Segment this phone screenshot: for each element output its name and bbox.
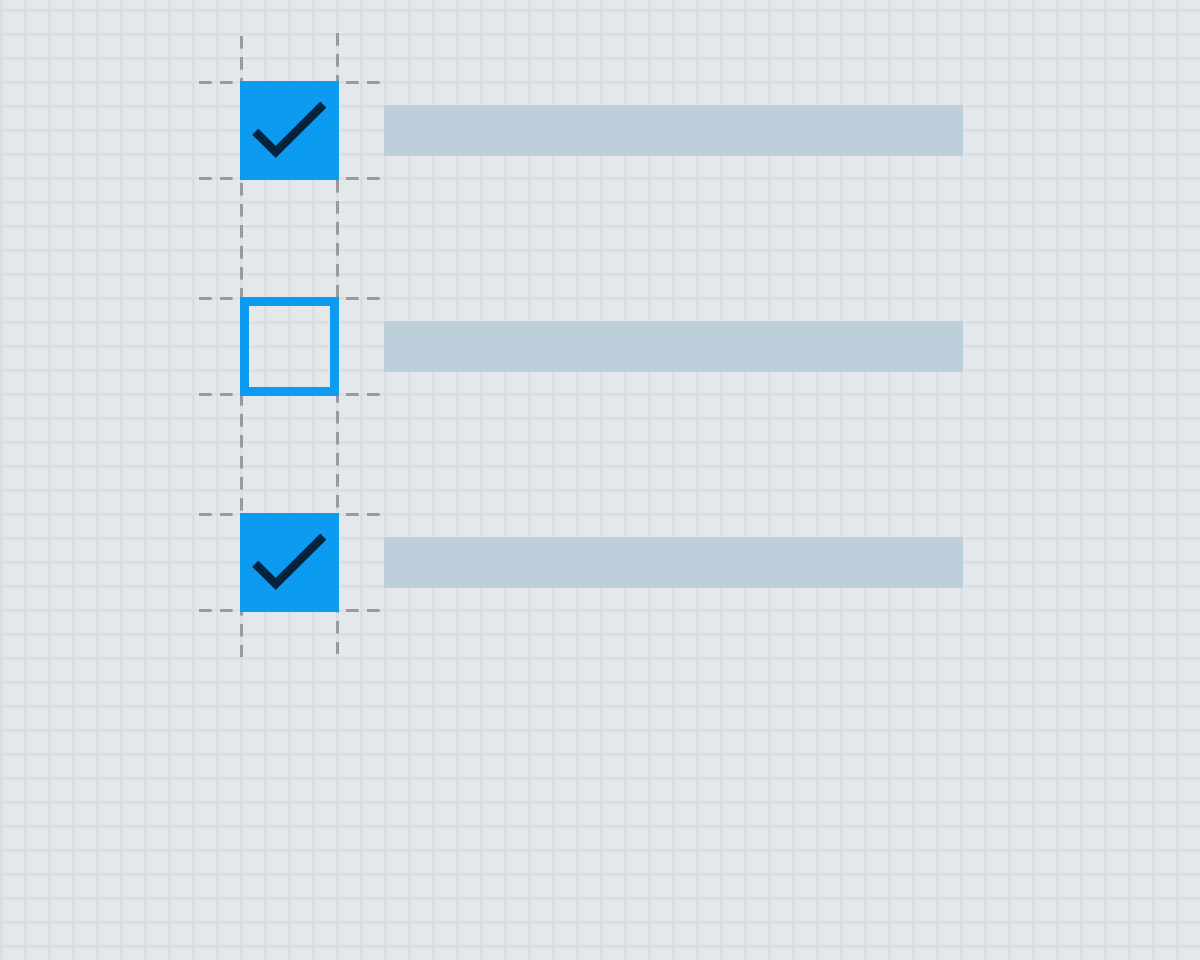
- button[interactable]: Checkbox, checked: [240, 513, 339, 612]
- button[interactable]: Checkbox, unchecked: [240, 297, 339, 396]
- button[interactable]: Checkbox, checked: [240, 81, 339, 180]
